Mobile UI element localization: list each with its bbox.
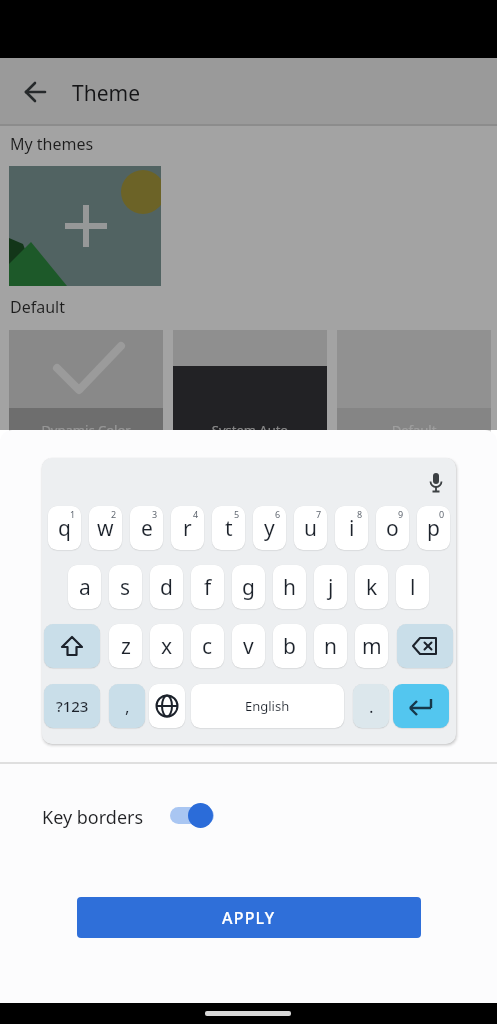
button[interactable]: n (314, 624, 347, 668)
staticText: l (410, 573, 416, 602)
button[interactable]: r (171, 506, 204, 550)
staticText: Key borders (42, 805, 242, 830)
staticText: 6 (275, 508, 281, 520)
staticText: n (324, 632, 337, 661)
button[interactable]: APPLY (77, 897, 421, 938)
button[interactable]: h (273, 565, 306, 609)
button[interactable]: z (109, 624, 142, 668)
button[interactable]: v (232, 624, 265, 668)
button[interactable]: , (109, 684, 145, 728)
button[interactable]: j (314, 565, 347, 609)
button[interactable]: i (335, 506, 368, 550)
button[interactable] (44, 624, 100, 668)
staticText: 9 (398, 508, 404, 520)
staticText: k (366, 573, 378, 602)
staticText: s (120, 573, 131, 602)
staticText: Default (10, 296, 210, 318)
staticText: APPLY (222, 907, 276, 929)
staticText: h (283, 573, 296, 602)
button[interactable] (13, 70, 57, 114)
staticText: o (386, 514, 399, 543)
button[interactable]: m (355, 624, 388, 668)
button[interactable]: b (273, 624, 306, 668)
staticText: Dynamic Color (9, 421, 163, 439)
staticText: d (160, 573, 173, 602)
staticText: w (97, 514, 114, 543)
staticText: q (58, 514, 71, 543)
staticText: i (349, 514, 355, 543)
staticText: English (245, 697, 290, 715)
staticText: v (243, 632, 254, 661)
button[interactable] (149, 684, 185, 728)
staticText: 4 (193, 508, 199, 520)
staticText: z (121, 632, 131, 661)
staticText: c (202, 632, 213, 661)
button[interactable]: t (212, 506, 245, 550)
staticText: g (242, 573, 255, 602)
staticText: t (225, 514, 233, 543)
button[interactable]: k (355, 565, 388, 609)
button[interactable]: Default (337, 330, 491, 434)
staticText: My themes (10, 133, 210, 155)
button[interactable]: x (150, 624, 183, 668)
staticText: f (204, 573, 212, 602)
button[interactable]: English (191, 684, 344, 728)
staticText: 2 (111, 508, 117, 520)
staticText: ?123 (56, 696, 89, 716)
staticText: y (264, 514, 275, 543)
button[interactable]: a (68, 565, 101, 609)
button[interactable] (393, 684, 449, 728)
staticText: , (125, 695, 130, 718)
staticText: Theme (72, 79, 272, 108)
button[interactable]: c (191, 624, 224, 668)
staticText: 3 (152, 508, 158, 520)
staticText: j (328, 573, 334, 602)
button[interactable]: u (294, 506, 327, 550)
button[interactable]: . (353, 684, 389, 728)
button[interactable]: d (150, 565, 183, 609)
button[interactable]: s (109, 565, 142, 609)
button[interactable]: p (417, 506, 450, 550)
button[interactable] (397, 624, 453, 668)
staticText: . (369, 695, 374, 718)
staticText: e (141, 514, 153, 543)
button[interactable]: o (376, 506, 409, 550)
staticText: 0 (439, 508, 445, 520)
button[interactable]: w (89, 506, 122, 550)
staticText: Default (337, 421, 491, 439)
button[interactable]: ?123 (44, 684, 100, 728)
button[interactable]: e (130, 506, 163, 550)
button[interactable]: y (253, 506, 286, 550)
staticText: x (161, 632, 173, 661)
staticText: p (427, 514, 440, 543)
staticText: 7 (316, 508, 322, 520)
button[interactable]: q (48, 506, 81, 550)
button[interactable] (170, 807, 214, 824)
staticText: 1 (70, 508, 76, 520)
button[interactable]: Dynamic Color (9, 330, 163, 434)
staticText: r (183, 514, 192, 543)
staticText: a (79, 573, 91, 602)
staticText: m (362, 632, 382, 661)
staticText: 5 (234, 508, 240, 520)
button[interactable]: l (396, 565, 429, 609)
button[interactable]: System Auto (173, 330, 327, 434)
staticText: 8 (357, 508, 363, 520)
button[interactable]: g (232, 565, 265, 609)
staticText: System Auto (173, 421, 327, 439)
button[interactable] (9, 166, 161, 286)
button[interactable]: f (191, 565, 224, 609)
staticText: b (283, 632, 296, 661)
staticText: u (304, 514, 317, 543)
